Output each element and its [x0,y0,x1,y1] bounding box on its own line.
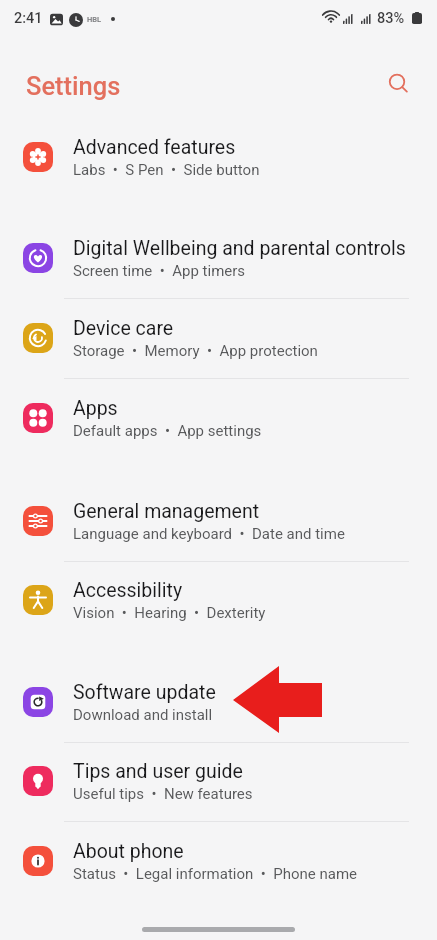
staticText: Apps [73,397,118,420]
staticText: Language and keyboard • Date and time [73,525,345,543]
staticText: Accessibility [73,579,183,602]
staticText: 2:41 [14,10,43,27]
staticText: Device care [73,317,174,340]
staticText: Vision • Hearing • Dexterity [73,604,266,622]
button[interactable]: Advanced features [0,118,437,196]
staticText: Labs • S Pen • Side button [73,161,260,179]
button[interactable]: Digital Wellbeing and parental controls [0,219,437,297]
staticText: Digital Wellbeing and parental controls [73,237,406,260]
staticText: Tips and user guide [73,760,243,783]
staticText: Storage • Memory • App protection [73,342,318,360]
staticText: Status • Legal information • Phone name [73,865,358,883]
staticText: About phone [73,840,184,863]
button[interactable]: Software update [0,663,437,741]
button[interactable]: Device care [0,299,437,377]
staticText: HBL [87,15,102,24]
staticText: Settings [26,71,121,101]
button[interactable]: Apps [0,379,437,457]
staticText: Advanced features [73,136,236,159]
button[interactable]: Tips and user guide [0,742,437,820]
button[interactable]: General management [0,482,437,560]
button[interactable]: Accessibility [0,561,437,639]
button[interactable]: About phone [0,822,437,900]
staticText: Useful tips • New features [73,785,253,803]
staticText: Software update [73,681,216,704]
staticText: Screen time • App timers [73,262,246,280]
staticText: Default apps • App settings [73,422,262,440]
button[interactable]: Search [381,66,416,101]
staticText: Download and install [73,706,213,724]
staticText: 83% [377,10,405,27]
staticText: General management [73,500,260,523]
